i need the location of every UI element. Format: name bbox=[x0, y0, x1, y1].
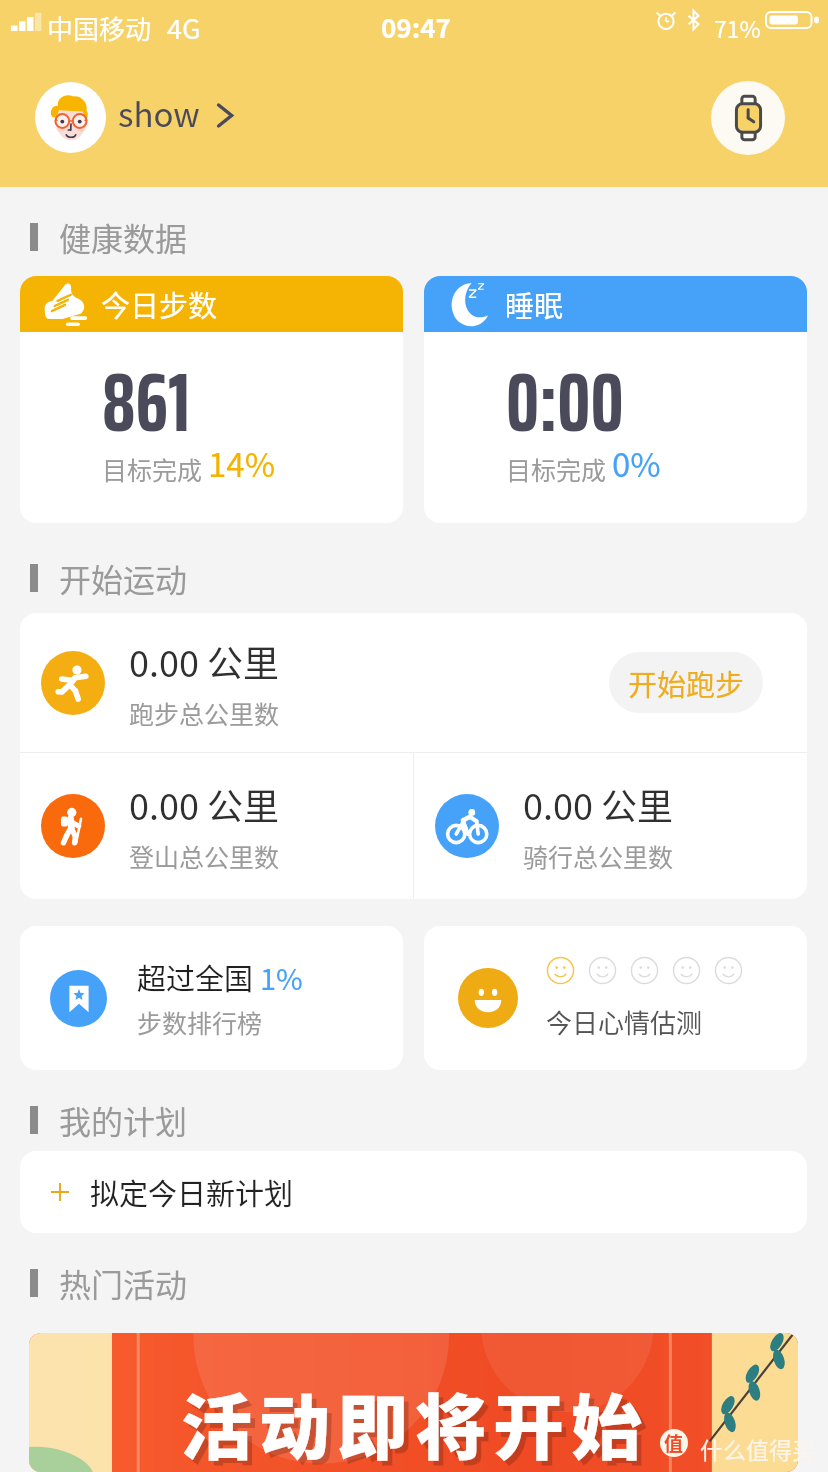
staticText: 0% bbox=[612, 439, 661, 487]
staticText: 什么值得买 bbox=[700, 1432, 815, 1465]
staticText: 目标完成 bbox=[102, 451, 208, 487]
button[interactable]: 0.00 公里 bbox=[414, 753, 807, 899]
staticText: 861 bbox=[102, 337, 191, 468]
staticText: 步数排行榜 bbox=[137, 1004, 263, 1040]
staticText: 超过全国 bbox=[137, 956, 260, 998]
button[interactable]: 超过全国 bbox=[20, 926, 403, 1070]
staticText: 骑行总公里数 bbox=[523, 838, 674, 874]
staticText: 09:47 bbox=[381, 8, 451, 46]
staticText: 中国移动 bbox=[47, 9, 152, 47]
staticText: 开始跑步 bbox=[628, 662, 745, 704]
staticText: 活动即将开始 bbox=[186, 1376, 655, 1472]
staticText: 我的计划 bbox=[59, 1097, 188, 1143]
staticText: 0.00 公里 bbox=[129, 778, 280, 830]
staticText: 0.00 公里 bbox=[523, 778, 674, 830]
staticText: 目标完成 bbox=[506, 451, 612, 487]
staticText: 值 bbox=[664, 1429, 684, 1457]
staticText: 健康数据 bbox=[59, 214, 188, 260]
staticText: show bbox=[118, 89, 200, 137]
staticText: 71% bbox=[714, 11, 761, 44]
staticText: 0.00 公里 bbox=[129, 635, 280, 687]
staticText: 今日步数 bbox=[101, 283, 218, 325]
staticText: 今日心情估测 bbox=[546, 1003, 703, 1041]
staticText: 14% bbox=[208, 439, 276, 487]
staticText: 登山总公里数 bbox=[129, 838, 280, 874]
button[interactable]: 拟定今日新计划 bbox=[20, 1151, 807, 1233]
button[interactable]: Watch bbox=[711, 81, 785, 155]
staticText: 0:00 bbox=[506, 337, 624, 468]
button[interactable]: 睡眠 bbox=[424, 276, 807, 523]
button[interactable]: 0.00 公里 bbox=[20, 753, 413, 899]
staticText: 4G bbox=[167, 8, 201, 47]
staticText: 活动即将开始 bbox=[181, 1371, 650, 1472]
button[interactable]: 0.00 公里 bbox=[20, 613, 807, 752]
button[interactable]: 开始跑步 bbox=[609, 652, 763, 713]
button[interactable]: 活动即将开始 bbox=[29, 1333, 798, 1472]
staticText: 拟定今日新计划 bbox=[90, 1171, 294, 1213]
staticText: 1% bbox=[260, 956, 303, 998]
staticText: 开始运动 bbox=[59, 555, 188, 601]
staticText: 睡眠 bbox=[505, 283, 564, 325]
staticText: 热门活动 bbox=[59, 1260, 188, 1306]
staticText: 跑步总公里数 bbox=[129, 695, 280, 731]
button[interactable]: show bbox=[35, 82, 233, 153]
button[interactable]: 今日步数 bbox=[20, 276, 403, 523]
button[interactable]: 今日心情估测 bbox=[424, 926, 807, 1070]
